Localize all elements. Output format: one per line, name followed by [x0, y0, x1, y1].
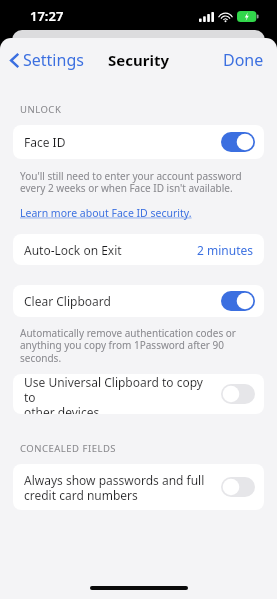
staticText: UNLOCK: [20, 103, 62, 116]
button[interactable]: Settings: [0, 43, 92, 77]
button[interactable]: Clear Clipboard: [13, 285, 264, 317]
button[interactable]: Use Universal Clipboard to copy to other…: [13, 374, 264, 414]
staticText: CONCEALED FIELDS: [20, 442, 117, 455]
staticText: Learn more about Face ID security.: [20, 206, 192, 220]
button[interactable]: Toggle off: [221, 384, 255, 404]
staticText: Clear Clipboard: [24, 293, 215, 309]
button[interactable]: Face ID: [13, 125, 264, 159]
button[interactable]: Done: [210, 43, 277, 77]
staticText: Use Universal Clipboard to copy to other…: [24, 374, 215, 414]
button[interactable]: Toggle on: [221, 132, 255, 152]
button[interactable]: Auto-Lock on Exit: [13, 234, 264, 265]
staticText: You'll still need to enter your account …: [20, 169, 242, 195]
button[interactable]: Learn more about Face ID security.: [13, 205, 199, 221]
staticText: Security: [108, 50, 169, 70]
staticText: Auto-Lock on Exit: [24, 242, 122, 258]
staticText: 17:27: [30, 7, 64, 25]
staticText: Settings: [23, 49, 84, 71]
staticText: Always show passwords and full credit ca…: [24, 472, 215, 503]
button[interactable]: Toggle on: [221, 291, 255, 311]
staticText: 2 minutes: [197, 242, 253, 258]
staticText: Done: [223, 49, 264, 71]
button[interactable]: Always show passwords and full credit ca…: [13, 464, 264, 510]
staticText: Face ID: [24, 134, 215, 150]
button[interactable]: Toggle off: [221, 477, 255, 497]
staticText: Automatically remove authentication code…: [20, 326, 236, 365]
